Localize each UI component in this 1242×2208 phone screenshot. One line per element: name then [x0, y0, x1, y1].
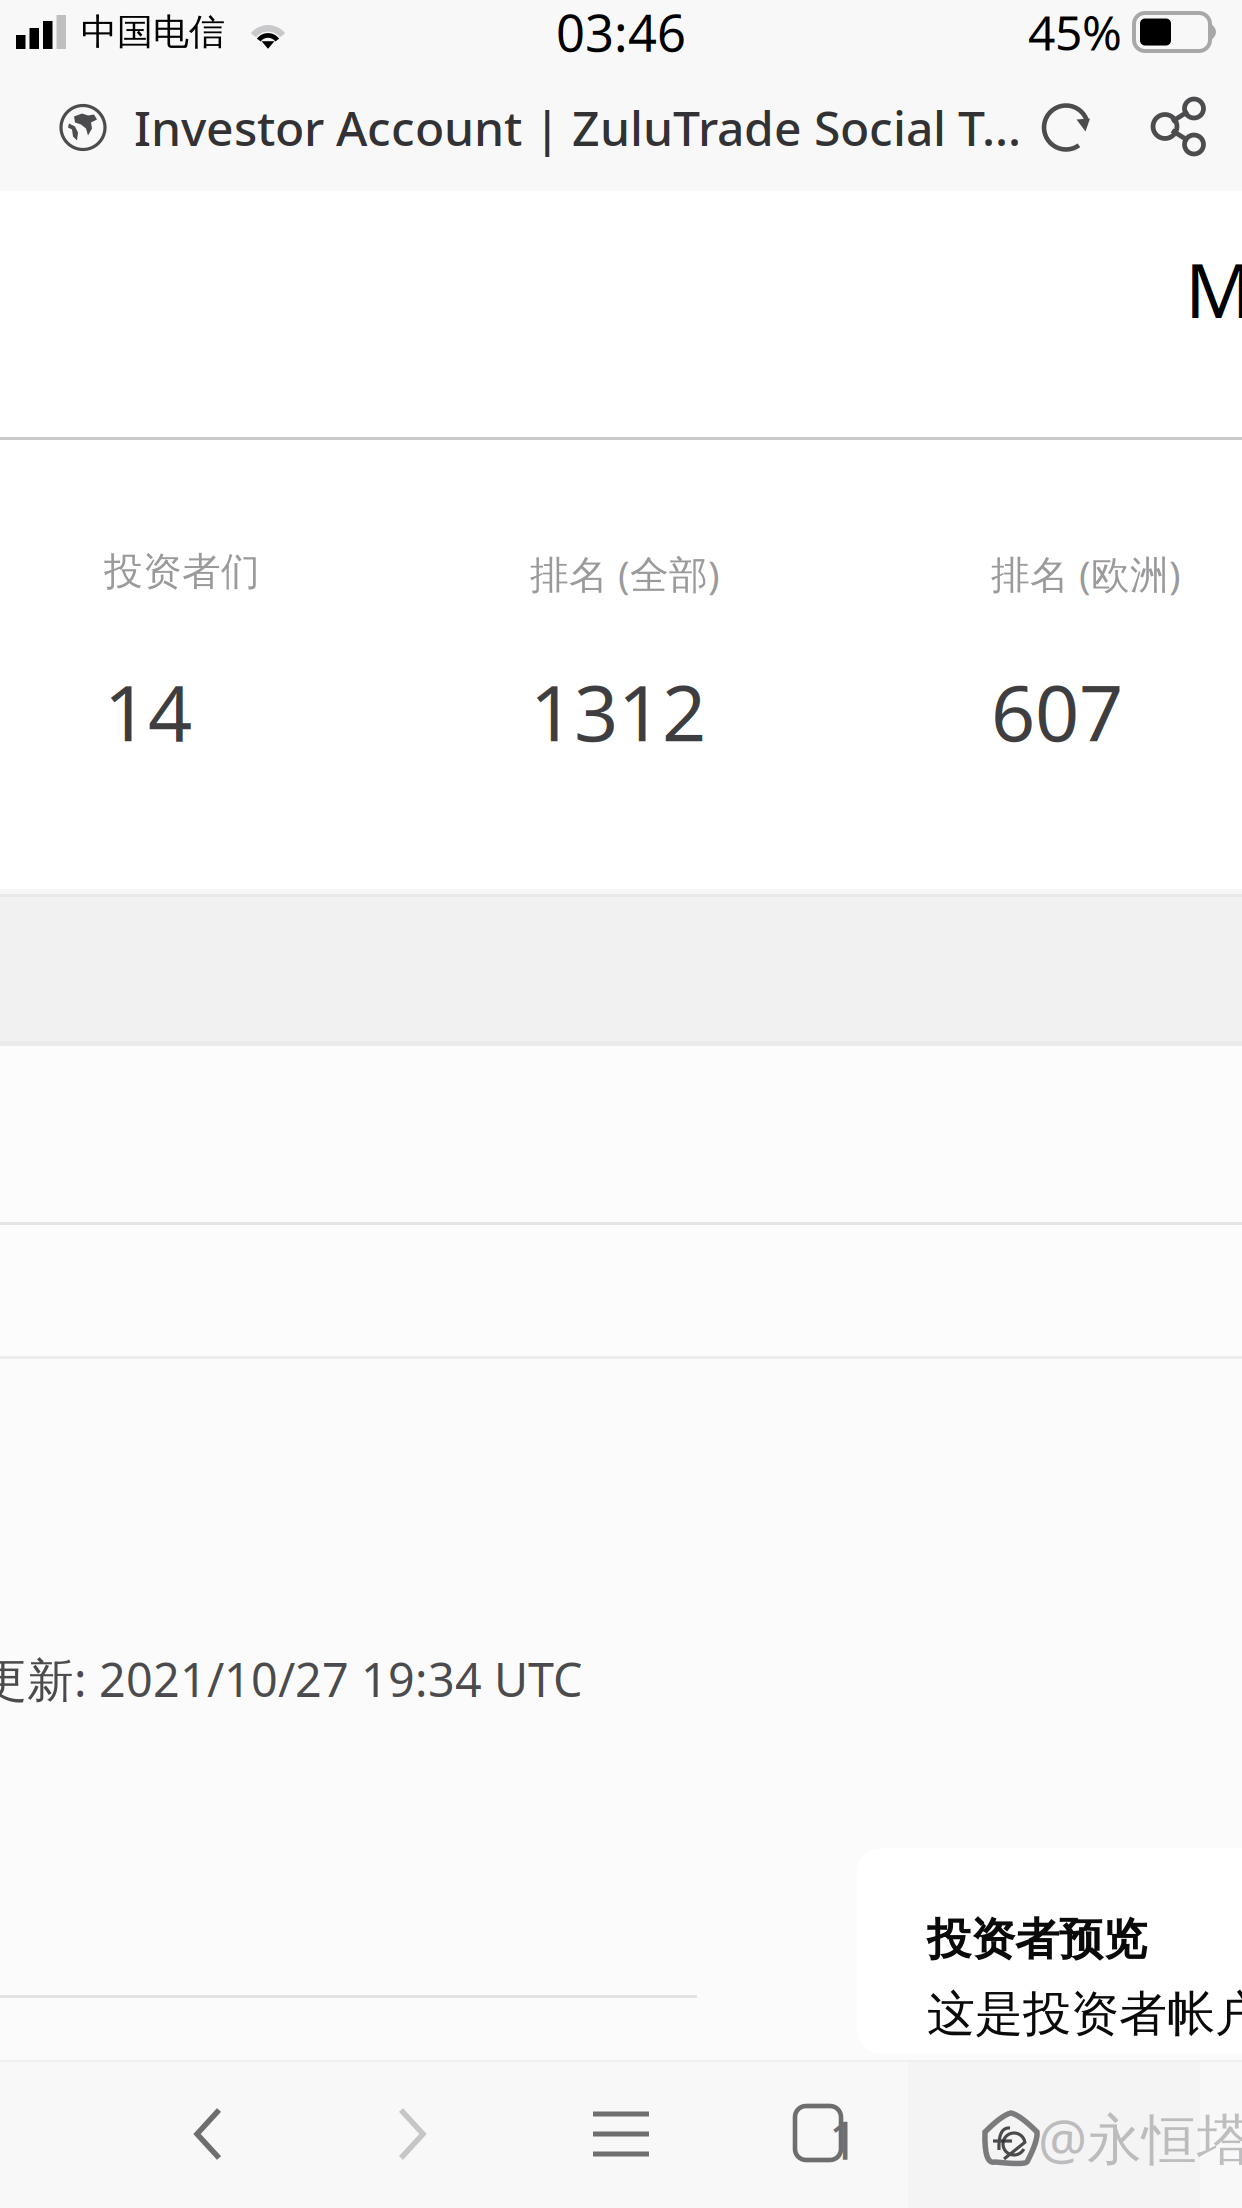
staticText: 607	[991, 660, 1123, 763]
button[interactable]: Back	[133, 2060, 283, 2208]
staticText: 投资者预览	[927, 1912, 1147, 1966]
staticText: 1	[828, 2104, 859, 2174]
staticText: @永恒塔	[1038, 2102, 1242, 2174]
button[interactable]: Menu	[546, 2060, 696, 2208]
button[interactable]: Reload	[1000, 81, 1132, 173]
button[interactable]: Tabs	[749, 2060, 899, 2208]
staticText: 1312	[530, 660, 706, 763]
staticText: 03:46	[556, 0, 686, 66]
staticText: 这是投资者帐户中	[927, 1984, 1242, 2043]
staticText: 排名 (欧洲)	[991, 548, 1181, 599]
button[interactable]: Website	[46, 82, 120, 172]
staticText: 投资者们	[104, 548, 260, 595]
staticText: 中国电信	[81, 10, 225, 54]
staticText: 14	[104, 660, 192, 763]
staticText: My	[1185, 239, 1242, 339]
staticText: 更新: 2021/10/27 19:34 UTC	[0, 1648, 582, 1710]
button[interactable]: Share	[1132, 81, 1224, 173]
button[interactable]: Forward	[337, 2060, 487, 2208]
staticText: Investor Account | ZuluTrade Social T...	[134, 96, 1021, 159]
staticText: 排名 (全部)	[530, 548, 720, 599]
staticText: 45%	[1028, 0, 1122, 64]
